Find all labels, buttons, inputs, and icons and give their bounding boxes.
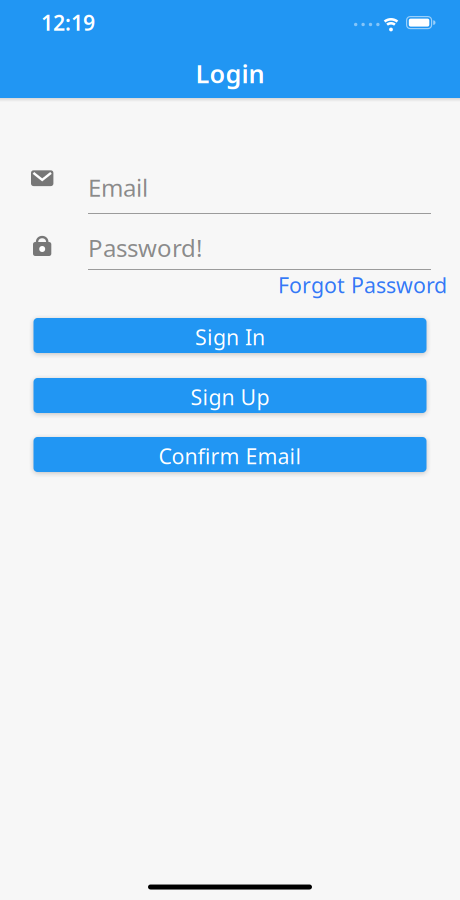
staticText: Password!	[88, 232, 202, 264]
button[interactable]: Forgot Password	[278, 271, 447, 299]
staticText: Sign Up	[190, 383, 269, 411]
button[interactable]: Sign Up	[33, 378, 426, 413]
staticText: Sign In	[195, 323, 265, 351]
staticText: Confirm Email	[158, 442, 301, 470]
button[interactable]: Confirm Email	[33, 437, 426, 472]
staticText: 12:19	[41, 8, 95, 37]
staticText: Login	[195, 57, 264, 90]
staticText: Email	[88, 172, 148, 203]
staticText: Forgot Password	[278, 271, 447, 299]
button[interactable]: Sign In	[33, 318, 426, 353]
